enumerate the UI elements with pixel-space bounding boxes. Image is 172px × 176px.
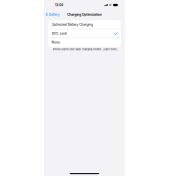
staticText: None — [74, 162, 107, 176]
staticText: 13:04 — [88, 13, 121, 27]
staticText: 80% Limit — [74, 126, 135, 142]
button[interactable]: Battery — [44, 40, 113, 76]
button[interactable]: Optimized Battery Charging — [61, 81, 172, 116]
staticText: Battery — [64, 50, 106, 66]
button[interactable]: 80% Limit — [61, 116, 172, 151]
staticText: Optimized Battery Charging — [74, 90, 172, 106]
button[interactable]: None — [61, 152, 172, 176]
